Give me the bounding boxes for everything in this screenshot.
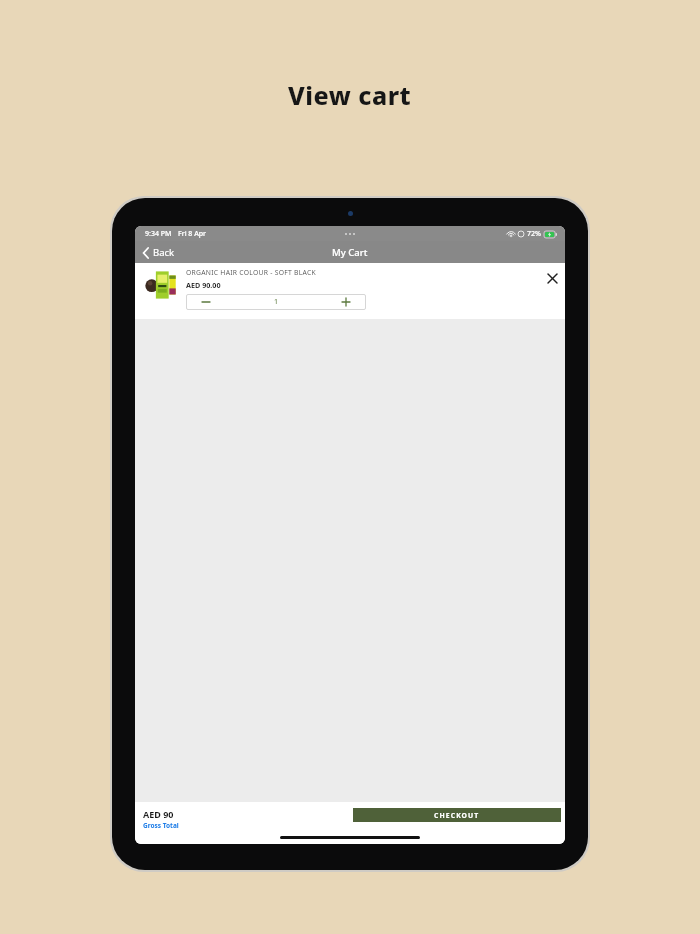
staticText: My Cart (332, 246, 368, 259)
staticText: ORGANIC HAIR COLOUR - SOFT BLACK (186, 268, 316, 277)
staticText: Gross Total (143, 821, 179, 830)
staticText: View cart (288, 78, 412, 112)
staticText: Fri 8 Apr (178, 229, 207, 239)
staticText: CHECKOUT (434, 811, 480, 820)
staticText: 72% (527, 229, 541, 239)
button[interactable]: Decrease quantity (186, 294, 226, 310)
staticText: AED 90 (143, 808, 174, 820)
staticText: AED 90.00 (186, 280, 221, 290)
staticText: 1 (274, 297, 279, 307)
button[interactable]: Remove item (543, 269, 561, 287)
button[interactable]: CHECKOUT (353, 808, 561, 822)
staticText: 9:34 PM (145, 229, 172, 239)
button[interactable]: Increase quantity (326, 294, 366, 310)
staticText: Back (153, 246, 175, 259)
button[interactable]: Back (135, 243, 185, 262)
